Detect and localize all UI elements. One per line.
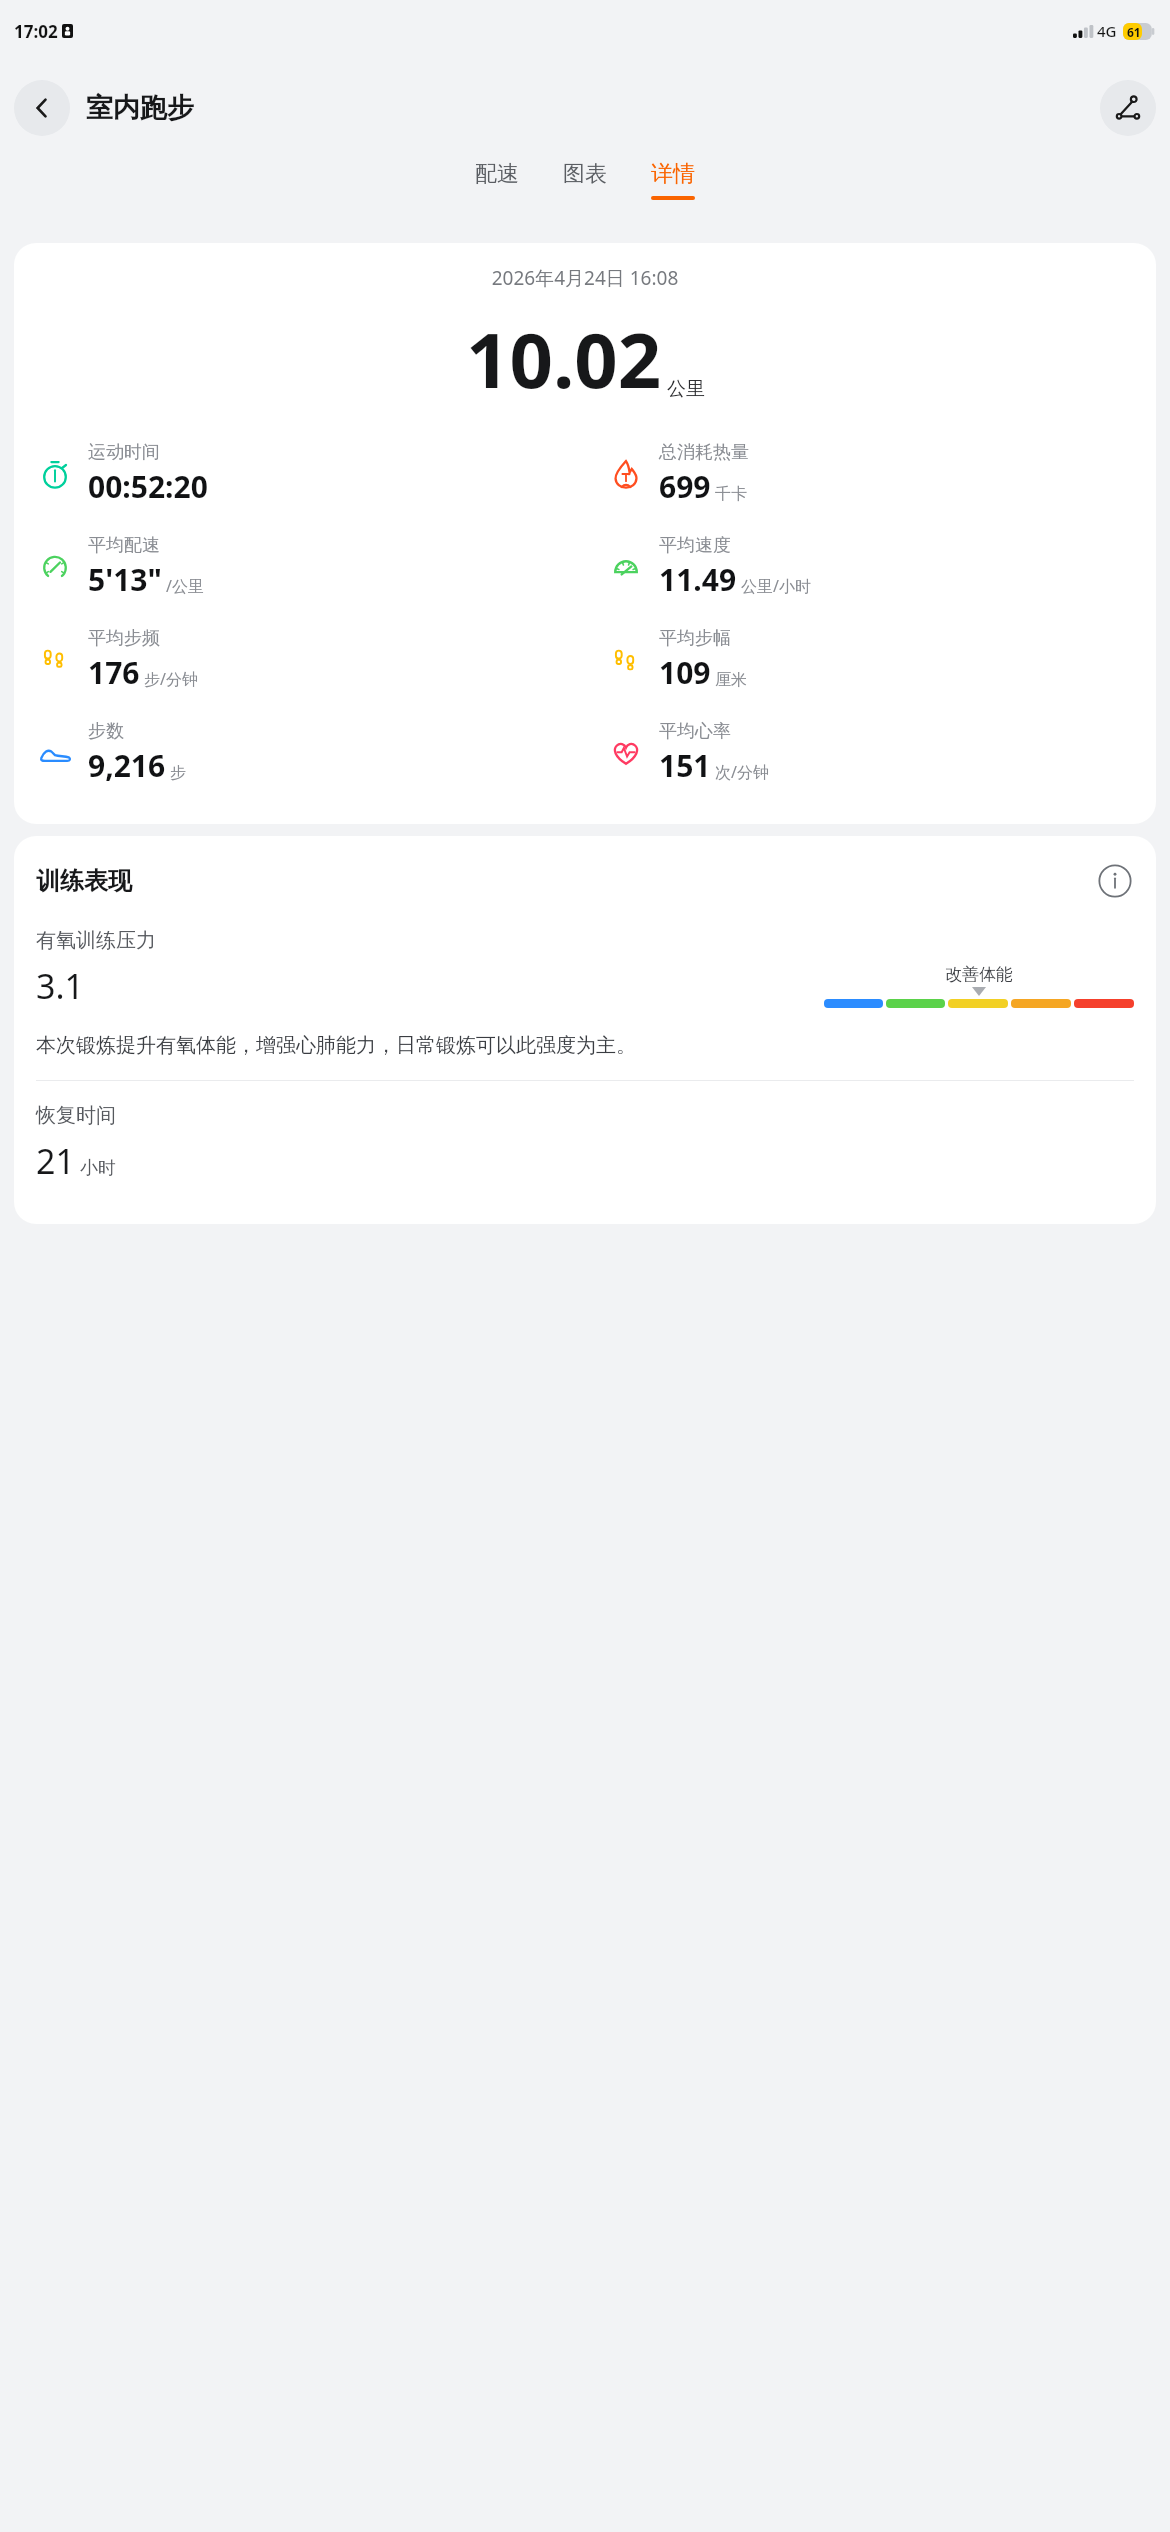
staticText: 步 — [170, 763, 186, 783]
staticText: 151 — [659, 745, 711, 786]
staticText: 21 — [36, 1138, 75, 1184]
staticText: 3.1 — [36, 963, 85, 1009]
button[interactable]: 训练表现 — [14, 836, 1156, 1224]
staticText: 有氧训练压力 — [36, 928, 156, 953]
staticText: 2026年4月24日 16:08 — [14, 265, 1156, 291]
button[interactable]: Share — [1100, 80, 1156, 136]
staticText: 61 — [1127, 24, 1141, 40]
button[interactable]: Back — [14, 80, 70, 136]
button[interactable]: 平均心率 — [585, 720, 1156, 786]
button[interactable]: 配速 — [467, 154, 527, 206]
staticText: 109 — [659, 652, 711, 693]
staticText: 总消耗热量 — [659, 441, 749, 464]
staticText: 本次锻炼提升有氧体能，增强心肺能力，日常锻炼可以此强度为主。 — [36, 1033, 636, 1058]
staticText: 平均配速 — [88, 534, 160, 557]
button[interactable]: Info — [1096, 862, 1134, 900]
button[interactable]: 运动时间 — [14, 441, 585, 507]
staticText: 步/分钟 — [144, 668, 198, 690]
staticText: /公里 — [166, 575, 204, 597]
staticText: 配速 — [475, 160, 519, 188]
staticText: 10.02 — [466, 307, 662, 411]
staticText: 11.49 — [659, 559, 737, 600]
staticText: 公里 — [667, 377, 705, 401]
staticText: 平均速度 — [659, 534, 731, 557]
staticText: 运动时间 — [88, 441, 160, 464]
button[interactable]: 平均配速 — [14, 534, 585, 600]
staticText: 9,216 — [88, 745, 166, 786]
staticText: 699 — [659, 466, 711, 507]
staticText: 176 — [88, 652, 140, 693]
staticText: 改善体能 — [945, 964, 1013, 985]
staticText: 平均步频 — [88, 627, 160, 650]
staticText: 公里/小时 — [741, 575, 811, 597]
staticText: 平均心率 — [659, 720, 731, 743]
staticText: 恢复时间 — [36, 1103, 116, 1128]
staticText: 千卡 — [715, 484, 747, 504]
staticText: 次/分钟 — [715, 761, 769, 783]
staticText: 步数 — [88, 720, 124, 743]
staticText: 17:02 — [14, 20, 58, 43]
staticText: 平均步幅 — [659, 627, 731, 650]
button[interactable]: 2026年4月24日 16:08 — [14, 243, 1156, 824]
staticText: 室内跑步 — [86, 91, 194, 125]
button[interactable]: 图表 — [555, 154, 615, 206]
staticText: 5'13" — [88, 559, 162, 600]
staticText: 详情 — [651, 160, 695, 188]
button[interactable]: 平均速度 — [585, 534, 1156, 600]
button[interactable]: 详情 — [643, 154, 703, 206]
staticText: 小时 — [80, 1157, 116, 1180]
staticText: 4G — [1097, 21, 1117, 41]
button[interactable]: 步数 — [14, 720, 585, 786]
staticText: 训练表现 — [36, 866, 132, 896]
button[interactable]: 平均步频 — [14, 627, 585, 693]
staticText: 图表 — [563, 160, 607, 188]
staticText: 00:52:20 — [88, 466, 208, 507]
staticText: 厘米 — [715, 670, 747, 690]
button[interactable]: 平均步幅 — [585, 627, 1156, 693]
button[interactable]: 总消耗热量 — [585, 441, 1156, 507]
